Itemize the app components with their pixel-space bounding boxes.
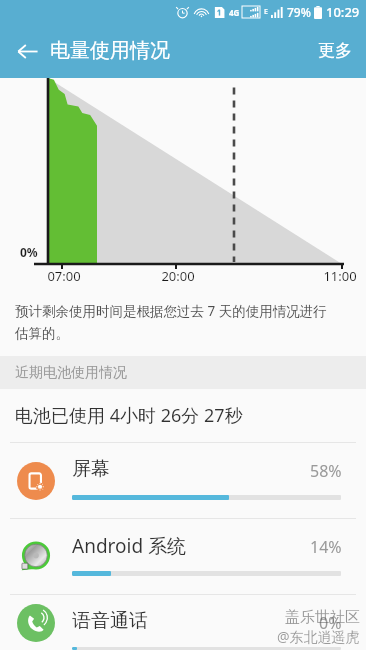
staticText: 79% [287, 4, 311, 20]
button[interactable]: 返回 [8, 32, 46, 70]
button[interactable]: 屏幕 [0, 443, 366, 518]
staticText: 更多 [318, 40, 352, 61]
staticText: 11:00 [319, 267, 361, 285]
staticText: 电池已使用 4小时 26分 27秒 [15, 403, 243, 428]
staticText: 4G [229, 7, 240, 18]
staticText: 电量使用情况 [50, 38, 170, 63]
button[interactable]: Android 系统 [0, 519, 366, 594]
staticText: 0% [20, 244, 38, 260]
staticText: 预计剩余使用时间是根据您过去 7 天的使用情况进行估算的。 [15, 302, 340, 342]
staticText: 语音通话 [72, 609, 148, 633]
staticText: 14% [310, 536, 342, 558]
staticText: 近期电池使用情况 [15, 364, 127, 382]
staticText: @东北逍遥虎 [277, 627, 360, 646]
staticText: Android 系统 [72, 533, 187, 559]
staticText: 盖乐世社区 [285, 608, 360, 627]
staticText: 58% [310, 460, 342, 482]
staticText: 07:00 [43, 267, 85, 285]
staticText: 10:29 [326, 3, 360, 21]
button[interactable]: 更多 [310, 34, 360, 67]
staticText: 0% [319, 612, 342, 634]
button[interactable]: 语音通话 [0, 595, 366, 650]
staticText: 20:00 [157, 267, 199, 285]
staticText: E [264, 7, 268, 17]
staticText: 屏幕 [72, 457, 110, 481]
